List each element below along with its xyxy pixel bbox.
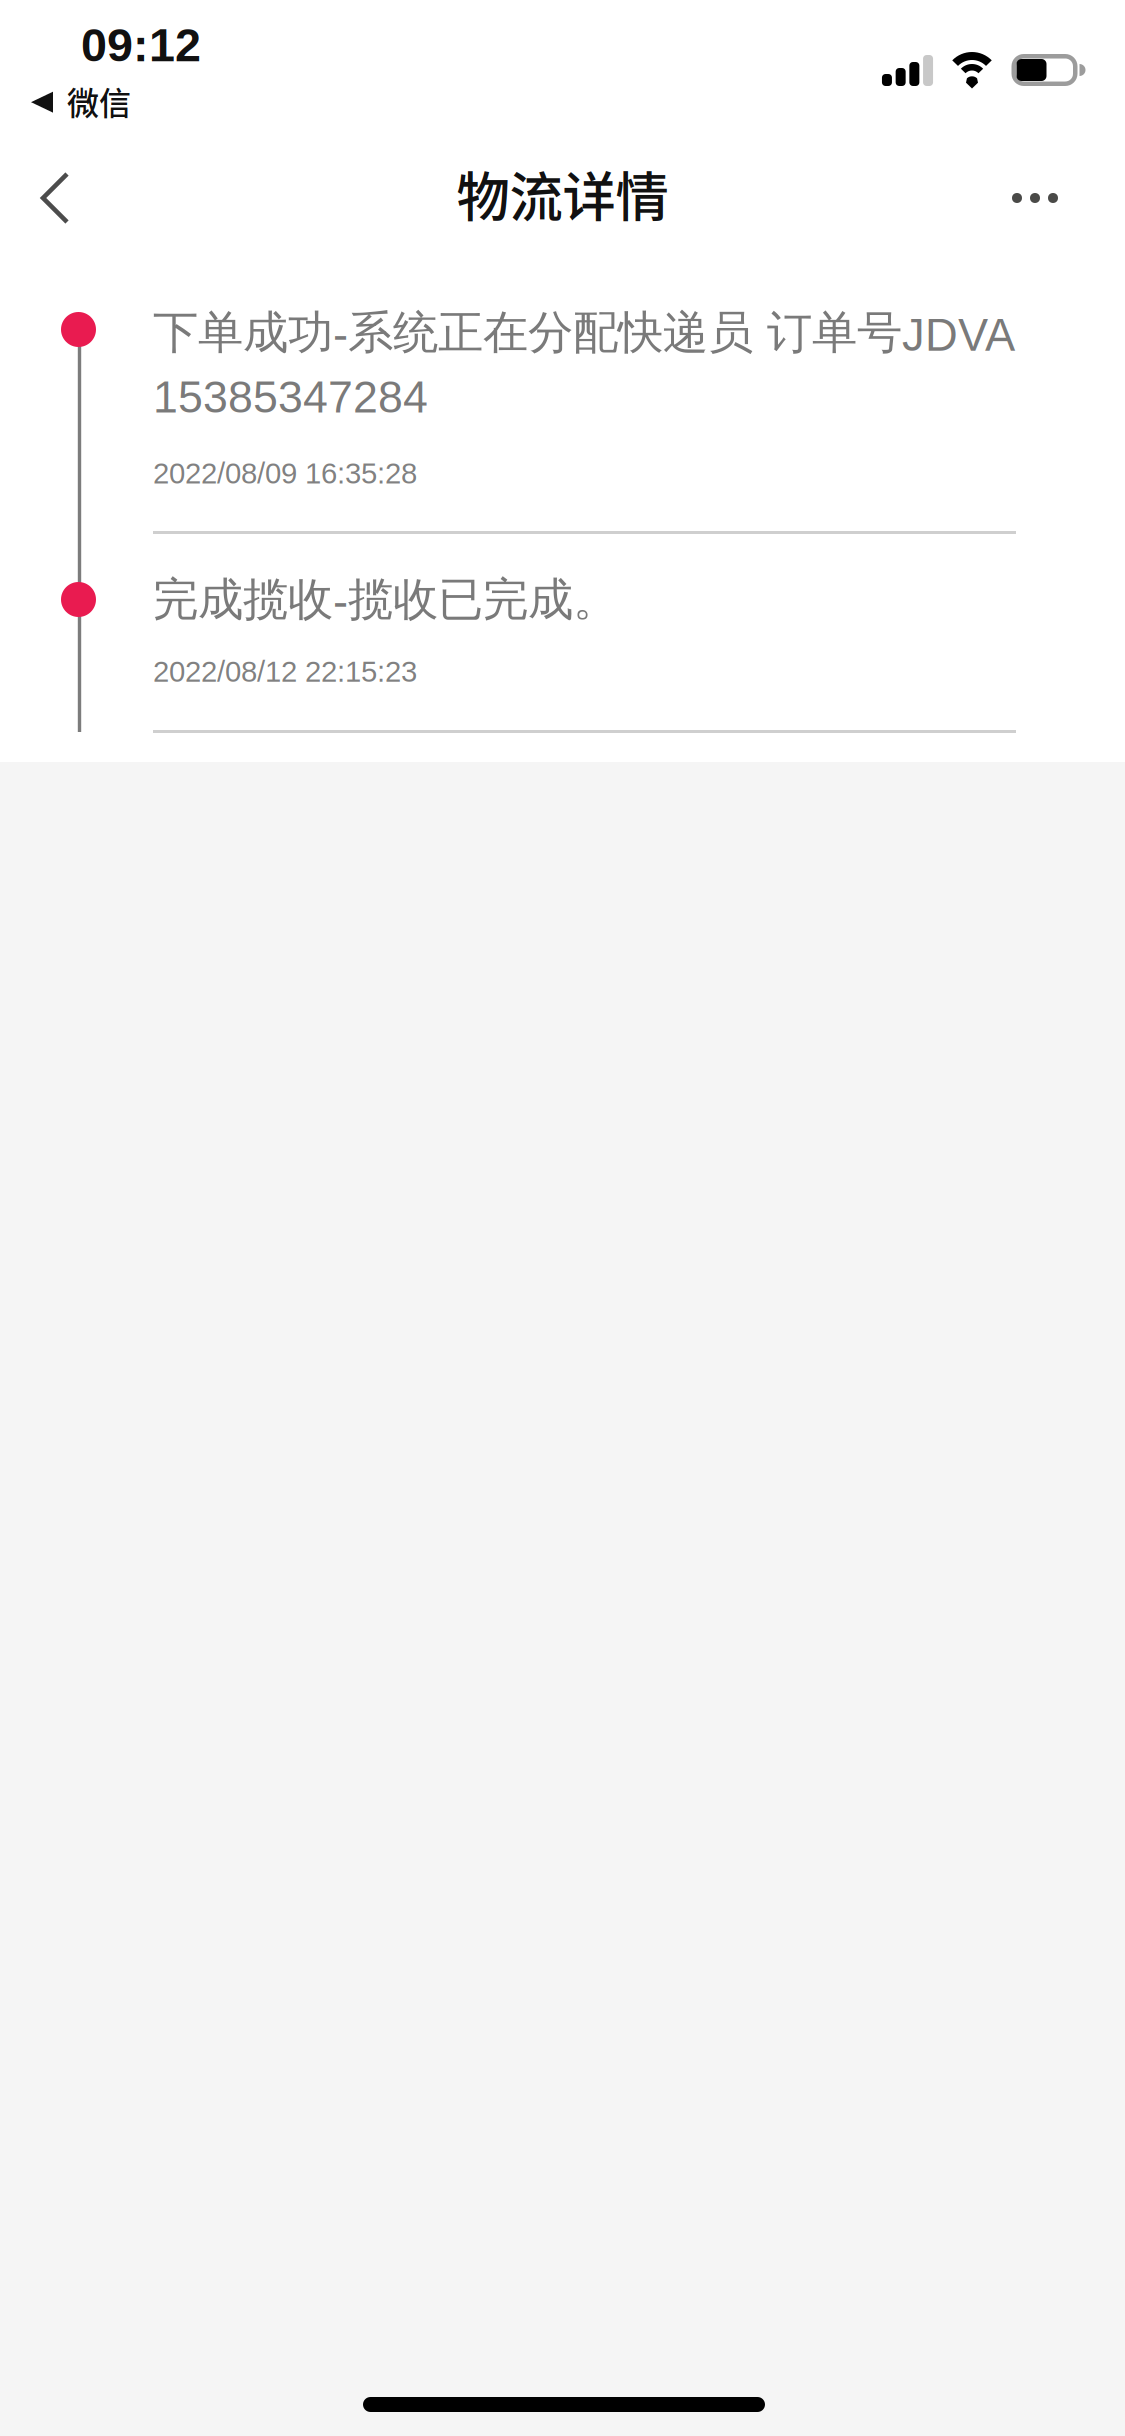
button[interactable]: Back xyxy=(0,143,110,253)
staticText: 2022/08/09 16:35:28 xyxy=(153,457,417,490)
button[interactable]: Back to WeChat xyxy=(31,78,131,124)
staticText: 09:12 xyxy=(81,19,201,71)
button[interactable]: More options xyxy=(975,148,1095,248)
staticText: 完成揽收-揽收已完成。 xyxy=(153,571,618,628)
staticText: 15385347284 xyxy=(153,372,428,422)
staticText: 物流详情 xyxy=(456,155,668,232)
staticText: 下单成功-系统正在分配快递员 订单号JDVA xyxy=(153,304,1015,361)
staticText: 微信 xyxy=(67,78,131,124)
staticText: 2022/08/12 22:15:23 xyxy=(153,655,417,688)
